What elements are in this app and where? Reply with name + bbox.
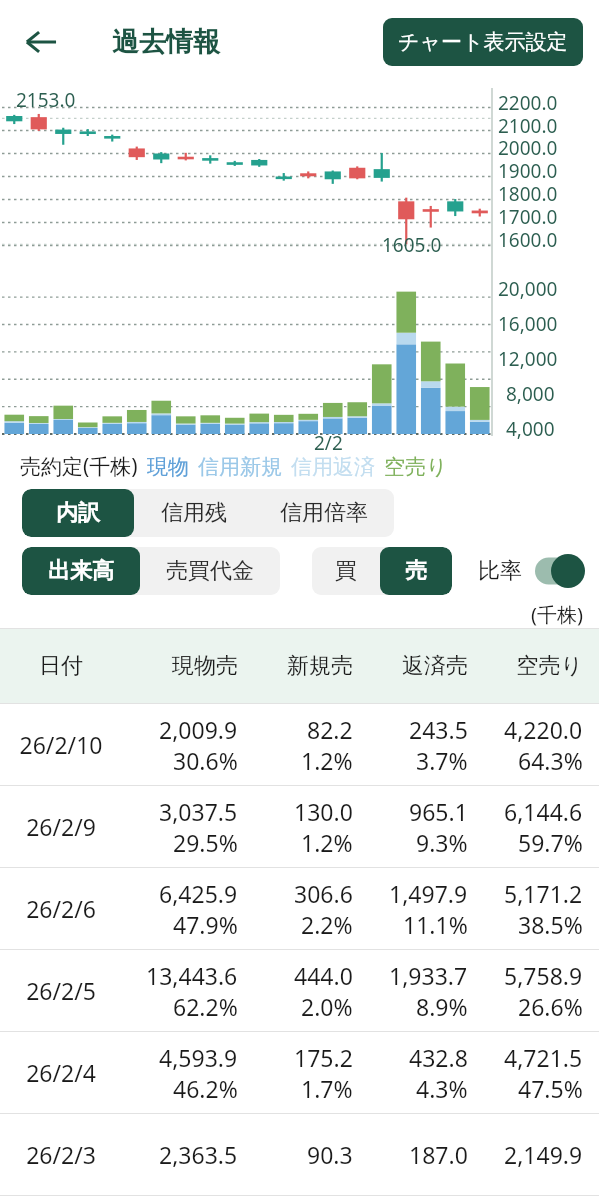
staticText: 新規売: [238, 652, 353, 680]
staticText: 965.1: [409, 796, 468, 827]
staticText: 175.2: [294, 1042, 353, 1073]
button[interactable]: 26/2/3: [0, 1114, 599, 1195]
staticText: 過去情報: [112, 25, 220, 59]
staticText: 3.7%: [416, 745, 468, 776]
staticText: 243.5: [409, 714, 468, 745]
staticText: 4,721.5: [504, 1042, 583, 1073]
staticText: 90.3: [307, 1139, 353, 1170]
button[interactable]: チャート表示設定: [383, 18, 583, 66]
staticText: 64.3%: [518, 745, 583, 776]
staticText: 4,000: [506, 416, 555, 442]
staticText: 5,758.9: [504, 960, 583, 991]
staticText: 62.2%: [173, 991, 238, 1022]
button[interactable]: 26/2/10: [0, 704, 599, 785]
staticText: 26/2/9: [0, 811, 122, 842]
staticText: 現物売: [122, 652, 238, 680]
button[interactable]: 売買代金: [140, 547, 280, 595]
staticText: 返済売: [353, 652, 468, 680]
button[interactable]: 売: [380, 547, 452, 595]
staticText: 444.0: [294, 960, 353, 991]
staticText: 2/2: [314, 430, 343, 456]
staticText: 26.6%: [518, 991, 583, 1022]
staticText: 2,149.9: [504, 1139, 583, 1170]
staticText: 2100.0: [498, 113, 558, 139]
staticText: 比率: [478, 557, 522, 585]
button[interactable]: 比率 toggle: [535, 554, 585, 588]
staticText: 1605.0: [382, 232, 442, 258]
staticText: 46.2%: [173, 1073, 238, 1104]
staticText: 6,144.6: [504, 796, 583, 827]
staticText: 売約定(千株): [20, 452, 138, 481]
staticText: 6,425.9: [159, 878, 238, 909]
button[interactable]: 買: [312, 547, 380, 595]
staticText: 1,497.9: [389, 878, 468, 909]
staticText: 1600.0: [498, 227, 558, 253]
staticText: 出来高: [48, 557, 114, 585]
staticText: 2.0%: [301, 991, 353, 1022]
button[interactable]: 信用倍率: [254, 489, 394, 537]
staticText: 9.3%: [416, 827, 468, 858]
staticText: 47.5%: [518, 1073, 583, 1104]
staticText: 4,593.9: [159, 1042, 238, 1073]
staticText: 306.6: [294, 878, 353, 909]
staticText: 8.9%: [416, 991, 468, 1022]
staticText: 82.2: [307, 714, 353, 745]
staticText: 16,000: [498, 311, 558, 337]
staticText: 2.2%: [301, 909, 353, 940]
staticText: (千株): [531, 601, 583, 628]
staticText: 1800.0: [498, 181, 558, 207]
staticText: 2153.0: [16, 87, 76, 113]
staticText: 1.7%: [301, 1073, 353, 1104]
staticText: 4,220.0: [504, 714, 583, 745]
staticText: 1900.0: [498, 158, 558, 184]
staticText: 2,363.5: [159, 1139, 238, 1170]
staticText: 信用残: [161, 499, 227, 527]
staticText: 3,037.5: [159, 796, 238, 827]
staticText: 47.9%: [173, 909, 238, 940]
button[interactable]: 内訳: [22, 489, 134, 537]
staticText: 432.8: [409, 1042, 468, 1073]
staticText: 38.5%: [518, 909, 583, 940]
staticText: 空売り: [384, 454, 448, 480]
staticText: 26/2/5: [0, 975, 122, 1006]
staticText: 30.6%: [173, 745, 238, 776]
staticText: 26/2/6: [0, 893, 122, 924]
button[interactable]: Back: [12, 13, 70, 71]
staticText: 59.7%: [518, 827, 583, 858]
staticText: 2,009.9: [159, 714, 238, 745]
staticText: 内訳: [56, 499, 100, 527]
staticText: 買: [335, 557, 357, 585]
staticText: 11.1%: [403, 909, 468, 940]
staticText: 12,000: [498, 346, 558, 372]
staticText: 日付: [0, 652, 122, 680]
staticText: 2000.0: [498, 135, 558, 161]
staticText: 現物: [147, 454, 189, 480]
staticText: 信用新規: [198, 454, 282, 480]
staticText: 1,933.7: [389, 960, 468, 991]
staticText: 26/2/4: [0, 1057, 122, 1088]
staticText: 26/2/10: [0, 729, 122, 760]
staticText: 20,000: [498, 276, 558, 302]
staticText: 信用返済: [291, 454, 375, 480]
staticText: 1.2%: [301, 745, 353, 776]
button[interactable]: 26/2/5: [0, 950, 599, 1031]
button[interactable]: 26/2/6: [0, 868, 599, 949]
staticText: 売買代金: [166, 557, 254, 585]
staticText: 29.5%: [173, 827, 238, 858]
button[interactable]: 出来高: [22, 547, 140, 595]
staticText: 5,171.2: [504, 878, 583, 909]
staticText: 130.0: [294, 796, 353, 827]
staticText: 1700.0: [498, 204, 558, 230]
staticText: 信用倍率: [280, 499, 368, 527]
staticText: 2200.0: [498, 90, 558, 116]
staticText: 13,443.6: [146, 960, 238, 991]
button[interactable]: 26/2/4: [0, 1032, 599, 1113]
staticText: 26/2/3: [0, 1139, 122, 1170]
staticText: チャート表示設定: [398, 29, 568, 55]
button[interactable]: 信用残: [134, 489, 254, 537]
staticText: 8,000: [506, 381, 555, 407]
button[interactable]: 26/2/9: [0, 786, 599, 867]
staticText: 1.2%: [301, 827, 353, 858]
staticText: 売: [405, 557, 427, 585]
staticText: 空売り: [468, 652, 583, 680]
